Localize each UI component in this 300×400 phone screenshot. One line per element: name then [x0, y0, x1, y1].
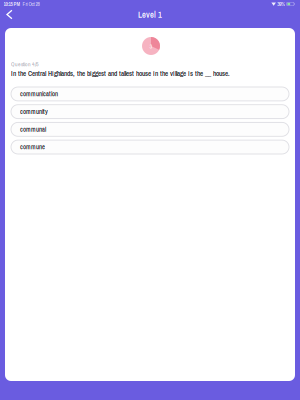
- staticText: 3: [149, 42, 152, 51]
- button[interactable]: communal: [11, 122, 289, 136]
- button[interactable]: commune: [11, 140, 289, 154]
- staticText: 39%: [277, 0, 285, 7]
- staticText: communal: [20, 125, 46, 134]
- staticText: In the Central Highlands, the biggest an…: [11, 69, 230, 78]
- staticText: communication: [20, 90, 58, 98]
- staticText: Question 4/5: [11, 60, 39, 68]
- staticText: Fri Oct 28: [20, 0, 39, 7]
- staticText: Level 1: [138, 9, 162, 20]
- staticText: commune: [20, 143, 45, 151]
- staticText: community: [20, 107, 48, 116]
- button[interactable]: communication: [11, 87, 289, 101]
- button[interactable]: Back: [0, 8, 20, 28]
- button[interactable]: community: [11, 105, 289, 119]
- staticText: 10:15 PM: [3, 0, 20, 7]
